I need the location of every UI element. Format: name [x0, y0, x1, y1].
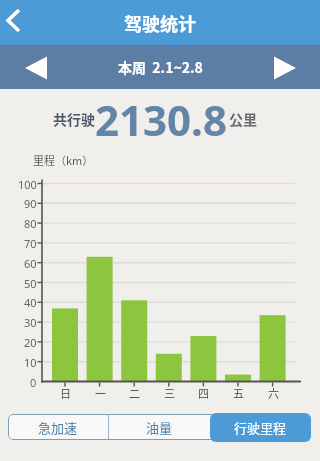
button[interactable]: [268, 45, 300, 89]
staticText: 70: [24, 236, 37, 251]
staticText: 急加速: [38, 418, 78, 437]
button[interactable]: 行驶里程: [210, 413, 311, 442]
staticText: 六: [268, 385, 279, 401]
staticText: 共行驶: [53, 109, 95, 129]
staticText: 30: [24, 315, 37, 330]
button[interactable]: 油量: [109, 414, 210, 440]
staticText: 公里: [229, 109, 257, 129]
staticText: 行驶里程: [234, 418, 287, 437]
button[interactable]: [0, 0, 45, 45]
staticText: 80: [24, 216, 37, 231]
staticText: 二: [129, 385, 140, 401]
staticText: 里程（km）: [33, 152, 94, 168]
staticText: 2130.8: [95, 91, 227, 148]
staticText: 日: [60, 385, 71, 401]
button[interactable]: [20, 45, 52, 89]
staticText: 油量: [146, 418, 173, 437]
staticText: 驾驶统计: [124, 10, 196, 36]
staticText: 四: [198, 385, 209, 401]
staticText: 三: [164, 385, 175, 401]
staticText: 0: [30, 375, 37, 390]
staticText: 100: [18, 177, 37, 192]
staticText: 五: [233, 385, 244, 401]
staticText: 50: [24, 276, 37, 291]
staticText: 60: [24, 256, 37, 271]
staticText: 40: [24, 295, 37, 310]
staticText: 20: [24, 335, 37, 350]
staticText: 10: [24, 355, 37, 370]
button[interactable]: 急加速: [8, 414, 108, 440]
staticText: 一: [95, 385, 106, 401]
staticText: 本周 2.1~2.8: [118, 57, 203, 77]
staticText: 90: [24, 196, 37, 211]
